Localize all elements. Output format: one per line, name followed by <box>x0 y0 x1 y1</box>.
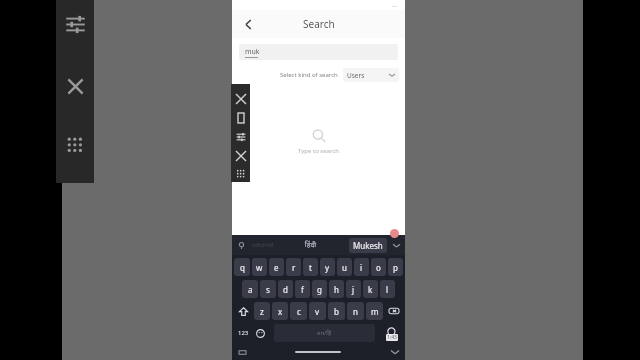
staticText: sdfsdfsdf <box>252 242 274 249</box>
staticText: d <box>283 284 288 295</box>
staticText: v <box>315 306 320 317</box>
button[interactable]: u <box>337 258 352 276</box>
button[interactable]: j <box>346 280 361 298</box>
button[interactable]: x <box>272 302 288 320</box>
staticText: h <box>334 284 339 295</box>
button[interactable]: Close <box>65 76 86 97</box>
button[interactable]: Grid <box>231 166 250 182</box>
button[interactable]: Apps grid <box>66 136 85 155</box>
button[interactable]: e <box>269 258 284 276</box>
button[interactable]: Expand suggestions <box>391 240 401 250</box>
staticText: j <box>352 284 355 295</box>
staticText: i <box>360 262 363 273</box>
staticText: Mukesh <box>353 240 383 251</box>
button[interactable]: g <box>312 280 327 298</box>
button[interactable]: l <box>380 280 395 298</box>
staticText: … <box>392 1 397 9</box>
staticText: z <box>260 306 264 317</box>
staticText: g <box>317 284 322 295</box>
button[interactable]: c <box>290 302 307 320</box>
button[interactable]: Close <box>231 147 250 164</box>
staticText: Search <box>303 17 335 31</box>
button[interactable]: Cut <box>231 90 250 107</box>
button[interactable]: Emoji <box>252 324 268 342</box>
button[interactable]: f <box>295 280 310 298</box>
staticText: u <box>342 262 347 273</box>
staticText: k <box>368 284 373 295</box>
staticText: r <box>292 262 296 273</box>
staticText: Select kind of search <box>280 71 338 79</box>
staticText: o <box>376 262 381 273</box>
button[interactable]: h <box>329 280 344 298</box>
staticText: x <box>278 306 283 317</box>
staticText: हिंदी <box>305 240 317 250</box>
button[interactable]: 123 <box>234 324 252 342</box>
staticText: en/हि <box>317 329 332 337</box>
button[interactable]: muk <box>239 44 398 60</box>
button[interactable]: a <box>242 280 258 298</box>
staticText: c <box>297 306 301 317</box>
button[interactable]: k <box>363 280 378 298</box>
button[interactable]: Keyboard settings <box>236 346 248 358</box>
staticText: p <box>393 262 398 273</box>
staticText: a <box>248 284 253 295</box>
button[interactable]: r <box>286 258 301 276</box>
button[interactable]: z <box>254 302 270 320</box>
staticText: muk <box>245 47 260 57</box>
button[interactable]: Hide keyboard <box>389 346 401 358</box>
button[interactable]: i <box>354 258 369 276</box>
staticText: f <box>301 284 304 295</box>
staticText: t <box>309 262 312 273</box>
button[interactable]: Voice input <box>236 240 247 251</box>
staticText: w <box>256 262 263 273</box>
button[interactable]: p <box>388 258 403 276</box>
button[interactable]: m <box>366 302 383 320</box>
staticText: Users <box>347 71 365 80</box>
staticText: 123 <box>238 329 249 337</box>
button[interactable]: Users <box>343 68 399 82</box>
button[interactable]: b <box>328 302 345 320</box>
button[interactable]: q <box>234 258 250 276</box>
staticText: Type to search <box>298 147 339 155</box>
button[interactable]: en/हि <box>274 324 375 342</box>
button[interactable]: v <box>309 302 326 320</box>
staticText: 1:43 <box>387 334 397 341</box>
staticText: y <box>325 262 330 273</box>
staticText: q <box>240 262 245 273</box>
button[interactable]: Copy <box>231 109 250 126</box>
button[interactable]: y <box>320 258 335 276</box>
button[interactable]: d <box>278 280 293 298</box>
button[interactable]: w <box>252 258 267 276</box>
button[interactable]: s <box>260 280 276 298</box>
button[interactable]: Shift <box>233 302 253 320</box>
button[interactable]: Search <box>381 324 403 342</box>
button[interactable]: Backspace <box>384 302 404 320</box>
button[interactable]: Adjust <box>231 128 250 145</box>
button[interactable]: Back <box>238 14 258 34</box>
button[interactable]: n <box>347 302 364 320</box>
staticText: l <box>386 284 389 295</box>
button[interactable]: Mukesh <box>349 238 387 253</box>
staticText: n <box>353 306 358 317</box>
button[interactable]: t <box>303 258 318 276</box>
button[interactable]: Adjust settings <box>65 14 86 35</box>
staticText: b <box>334 306 339 317</box>
staticText: s <box>266 284 270 295</box>
button[interactable]: o <box>371 258 386 276</box>
staticText: e <box>274 262 279 273</box>
staticText: m <box>371 306 379 317</box>
